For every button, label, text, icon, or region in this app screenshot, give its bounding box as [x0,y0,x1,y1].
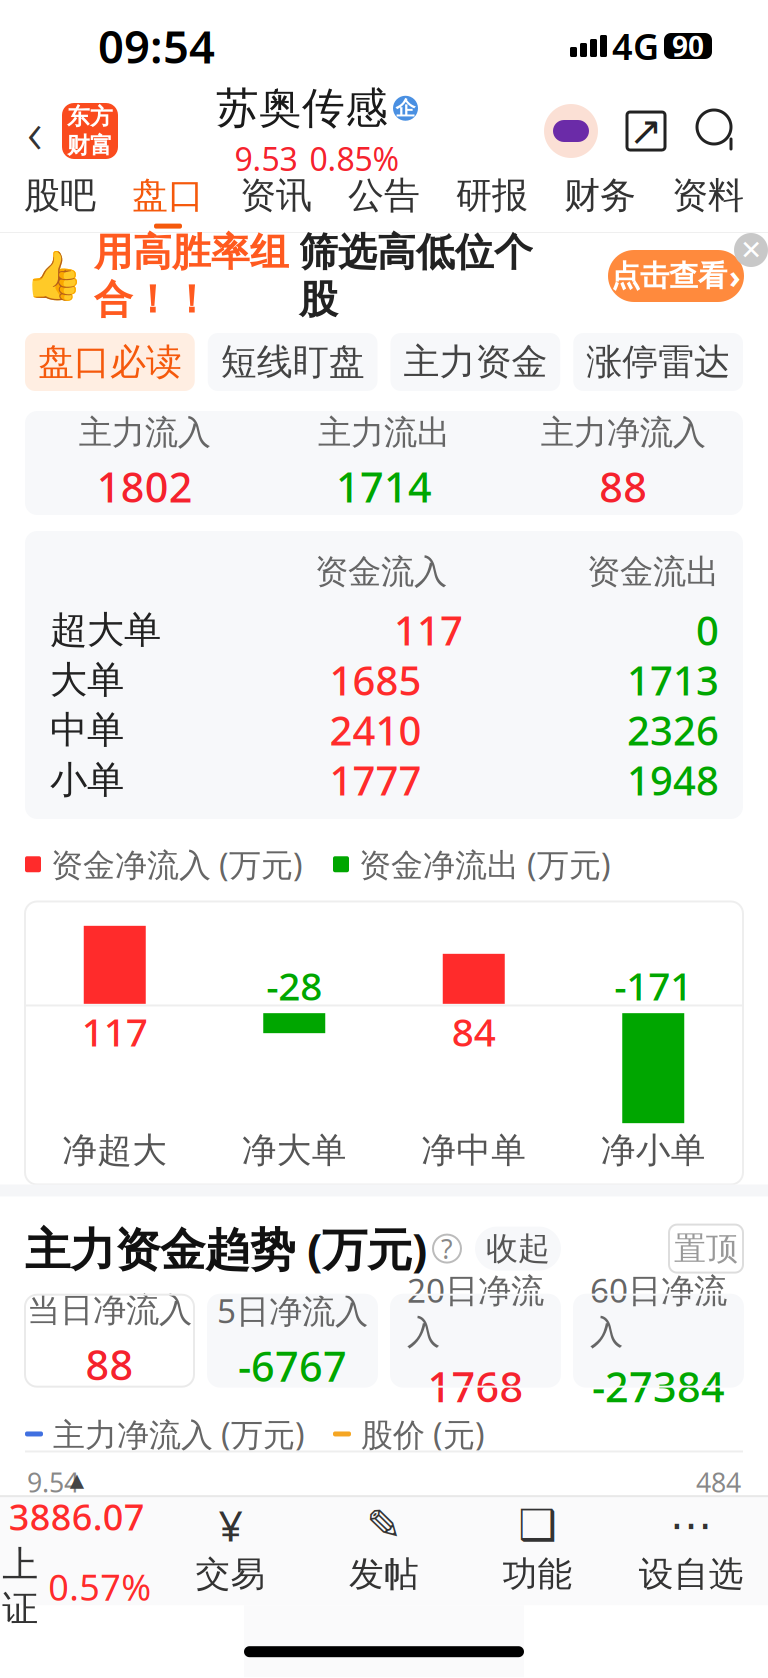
button[interactable]: ❑ [461,1505,614,1595]
staticText: 公告 [348,173,420,218]
staticText: ‹ [27,92,43,170]
button[interactable]: 盘口 [114,170,222,232]
staticText: › [729,255,741,297]
staticText: 股价 (元) [351,1413,485,1455]
staticText: 交易 [195,1553,265,1595]
staticText: 0.57% [48,1563,151,1611]
staticText: 大单 [50,657,124,703]
staticText: 财富 [67,131,113,159]
staticText: 资讯 [240,173,312,218]
button[interactable]: Search [694,107,742,155]
button[interactable]: 20日净流入 [391,1295,560,1387]
staticText: -6767 [238,1338,347,1393]
button[interactable]: 盘口必读 [25,333,195,391]
staticText: 资金流入 [315,551,447,592]
staticText: 企 [395,96,415,121]
staticText: 研报 [456,173,528,218]
staticText: 置顶 [674,1229,738,1268]
button[interactable]: ✎ [307,1505,461,1595]
staticText: 收起 [486,1229,550,1268]
button[interactable]: 涨停雷达 [573,333,743,391]
staticText: 发帖 [349,1553,419,1595]
button[interactable]: 资讯 [222,170,330,232]
button[interactable]: 60日净流入 [574,1295,743,1387]
button[interactable]: 当日净流入 [25,1295,194,1387]
staticText: 1713 [627,653,719,706]
staticText: 净超大 [62,1129,167,1172]
staticText: 短线盯盘 [221,340,365,384]
staticText: ✕ [740,235,762,265]
staticText: 9.53 [234,137,297,180]
staticText: 60日净流入 [590,1268,727,1353]
button[interactable]: AI Assistant [544,104,598,158]
staticText: 点击查看 [611,258,727,294]
button[interactable]: 主力资金 [390,333,560,391]
staticText: 09:54 [98,16,215,76]
staticText: 1948 [627,753,719,806]
staticText: 484 [696,1464,741,1500]
button[interactable]: 收起 [475,1227,561,1271]
staticText: 主力流入 [79,412,211,453]
button[interactable]: 5日净流入 [208,1295,377,1387]
staticText: 20日净流入 [407,1268,544,1353]
button[interactable]: 👍 [0,235,768,317]
staticText: 小单 [50,757,124,803]
button[interactable]: 东方财富 [62,103,118,159]
staticText: 资金净流入 (万元) [41,843,303,885]
button[interactable]: 公告 [330,170,438,232]
staticText: -171 [614,960,692,1011]
staticText: 功能 [503,1553,573,1595]
staticText: 用高胜率组合！！ [94,228,289,323]
staticText: 主力资金 [403,340,547,384]
staticText: ↗ [629,108,663,154]
staticText: 当日净流入 [27,1290,192,1331]
staticText: 0 [696,603,719,656]
staticText: 2410 [329,703,421,756]
staticText: 84 [452,1006,496,1057]
staticText: 1802 [97,459,193,514]
staticText: 1685 [329,653,421,706]
button[interactable]: Close ad [734,233,768,267]
staticText: 财务 [564,173,636,218]
staticText: 88 [85,1337,133,1392]
staticText: 中单 [50,707,124,753]
staticText: ? [441,1231,453,1266]
staticText: 主力资金趋势 (万元) [25,1218,427,1279]
button[interactable]: 研报 [438,170,546,232]
staticText: -28 [266,960,322,1011]
staticText: ❑ [519,1501,557,1549]
staticText: 1777 [329,753,421,806]
staticText: 3886.07 [9,1493,145,1540]
button[interactable]: 股吧 [6,170,114,232]
staticText: 盘口必读 [38,340,182,384]
staticText: 88 [599,459,647,514]
staticText: 筛选高低位个股 [299,228,533,323]
staticText: 117 [82,1006,148,1057]
staticText: 净小单 [601,1129,706,1172]
staticText: 主力净流入 (万元) [43,1413,305,1455]
staticText: 117 [394,603,463,656]
button[interactable]: Share [624,109,668,153]
button[interactable]: Help [433,1235,461,1263]
staticText: ¥ [218,1497,242,1553]
staticText: 5日净流入 [217,1288,368,1332]
staticText: 👍 [24,249,84,303]
button[interactable]: ▲ [0,1469,154,1631]
button[interactable]: ⋯ [614,1505,768,1595]
staticText: ▲ [70,1469,84,1491]
staticText: 涨停雷达 [586,340,730,384]
staticText: 净大单 [242,1129,347,1172]
button[interactable]: ¥ [154,1505,307,1595]
staticText: 资金流出 [587,551,719,592]
button[interactable]: 短线盯盘 [208,333,378,391]
button[interactable]: 资料 [654,170,762,232]
button[interactable]: 置顶 [669,1225,743,1273]
staticText: 主力流出 [318,412,450,453]
staticText: 超大单 [50,607,161,653]
staticText: 苏奥传感 [216,82,388,134]
button[interactable]: Back [12,101,58,161]
staticText: 上证 [2,1542,38,1631]
staticText: 净中单 [421,1129,526,1172]
staticText: 1714 [336,459,432,514]
button[interactable]: 财务 [546,170,654,232]
